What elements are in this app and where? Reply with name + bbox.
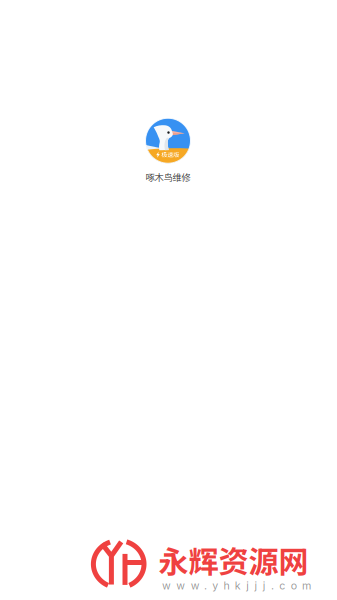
staticText: 极速版 [161, 150, 179, 159]
button[interactable]: 极速版 [145, 118, 190, 184]
staticText: 永辉资源网 [158, 538, 308, 581]
staticText: www.yhkjjj.com [162, 579, 311, 592]
staticText: 啄木鸟维修 [145, 170, 190, 184]
